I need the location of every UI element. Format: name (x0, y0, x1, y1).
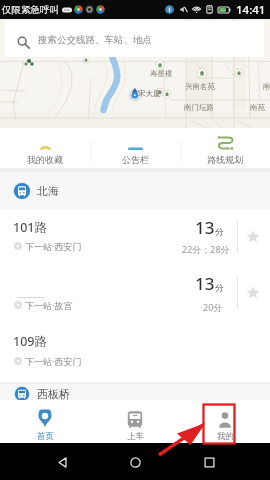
staticText: 22分；28分 (182, 243, 230, 255)
button[interactable]: 搜索公交线路、车站、地点 (5, 21, 264, 57)
button[interactable] (0, 325, 270, 382)
staticText: 上车 (127, 431, 144, 442)
button[interactable]: 我的收藏 (0, 128, 90, 168)
button[interactable] (0, 209, 270, 278)
staticText: 下一站·西安门 (25, 240, 82, 252)
staticText: 公告栏 (122, 154, 149, 165)
staticText: 14:41 (236, 2, 266, 18)
staticText: 分 (215, 227, 224, 238)
staticText: 路线规划 (207, 154, 243, 165)
staticText: 下一站·故宫 (25, 299, 73, 311)
button[interactable]: Recents (197, 450, 221, 474)
staticText: 109路 (13, 333, 47, 350)
staticText: 兴南名苑 (185, 82, 215, 91)
button[interactable]: Back (50, 450, 74, 474)
button[interactable]: Favourite (246, 230, 260, 244)
button[interactable]: Home (123, 450, 147, 474)
staticText: 我的 (217, 431, 234, 442)
button[interactable]: 北海 (0, 172, 270, 209)
staticText: 西板桥 (37, 387, 70, 401)
staticText: 首页 (37, 431, 54, 442)
button[interactable]: 上车 (90, 400, 180, 443)
staticText: 南门坛路 (184, 103, 214, 112)
staticText: 仅限紧急呼叫 (2, 4, 59, 16)
staticText: 下一站·西安门 (25, 355, 82, 367)
button[interactable]: Favourite (246, 286, 260, 300)
staticText: 13 (195, 216, 215, 239)
button[interactable]: 我的 (180, 400, 270, 443)
button[interactable] (0, 278, 270, 325)
staticText: 宋大厦 (138, 89, 161, 98)
button[interactable]: 路线规划 (180, 128, 270, 168)
staticText: 13 (195, 272, 215, 295)
button[interactable]: 西板桥 (0, 384, 270, 400)
staticText: 分 (215, 283, 224, 294)
button[interactable]: 首页 (0, 400, 90, 443)
staticText: 搜索公交线路、车站、地点 (38, 34, 152, 46)
staticText: 南苑 (250, 103, 265, 112)
staticText: 101路 (13, 219, 47, 236)
staticText: 20分 (203, 301, 223, 313)
button[interactable]: 公告栏 (90, 128, 180, 168)
staticText: 我的收藏 (27, 154, 63, 165)
staticText: 北海 (37, 184, 59, 198)
staticText: 南 (263, 82, 270, 91)
staticText: 寿星楼 (150, 69, 173, 78)
